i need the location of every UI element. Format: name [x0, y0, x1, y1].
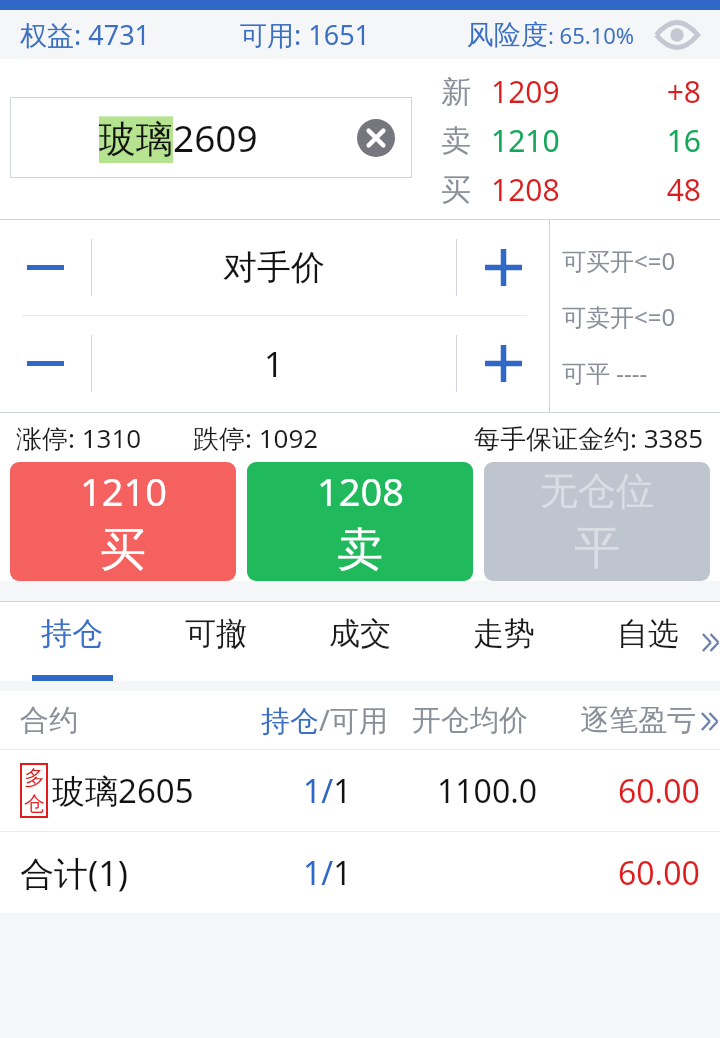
staticText: 涨停: 1310 [16, 420, 142, 456]
staticText: 16 [611, 120, 701, 161]
staticText: 1208 [317, 465, 404, 517]
staticText: 48 [611, 169, 701, 210]
button[interactable]: 买 [441, 165, 711, 214]
button[interactable]: 1210 [10, 462, 236, 581]
button[interactable]: More tabs [700, 625, 720, 659]
staticText: 可买开<=0 [562, 244, 676, 277]
staticText: 无仓位 [540, 467, 654, 515]
button[interactable]: 成交 [288, 602, 432, 681]
button[interactable]: 多 仓 [0, 750, 720, 831]
button[interactable]: 玻璃2609 [10, 97, 412, 178]
staticText: 1/1 [303, 851, 352, 895]
staticText: 玻璃2605 [52, 768, 194, 813]
staticText: +8 [611, 71, 701, 112]
staticText: 开仓均价 [412, 702, 528, 739]
staticText: 跌停: 1092 [193, 420, 319, 456]
staticText: 卖 [337, 521, 383, 579]
button[interactable]: 风险度: 65.10% [467, 18, 635, 52]
staticText: 1/1 [303, 769, 352, 813]
button[interactable]: Toggle balance visibility [653, 13, 701, 57]
button[interactable]: 无仓位 [484, 462, 710, 581]
staticText: 持仓/可用 [261, 700, 388, 740]
staticText: 对手价 [223, 246, 325, 289]
button[interactable]: 可用: 1651 [240, 16, 371, 53]
staticText: 成交 [329, 614, 391, 653]
button[interactable]: 可撤 [144, 602, 288, 681]
button[interactable]: Decrease [0, 220, 91, 315]
button[interactable]: 持仓 [0, 602, 144, 681]
staticText: 持仓 [41, 614, 103, 653]
staticText: 买 [441, 171, 491, 209]
staticText: 新 [441, 73, 491, 111]
staticText: 可卖开<=0 [562, 300, 676, 333]
staticText: 60.00 [618, 851, 700, 895]
button[interactable]: Clear search [357, 119, 395, 157]
staticText: 平 [574, 519, 620, 577]
staticText: 玻璃2609 [99, 112, 258, 163]
button[interactable]: Increase [457, 220, 549, 315]
staticText: 可平 ---- [562, 356, 648, 389]
staticText: 可撤 [185, 614, 247, 653]
staticText: 多 仓 [24, 765, 45, 817]
staticText: 1100.0 [437, 769, 538, 813]
staticText: 1210 [80, 465, 167, 517]
staticText: 60.00 [618, 769, 700, 813]
staticText: 走势 [473, 614, 535, 653]
staticText: 1209 [491, 71, 611, 112]
button[interactable]: Increase [457, 316, 549, 411]
staticText: 逐笔盈亏 [580, 702, 696, 739]
button[interactable]: More columns [699, 706, 720, 736]
staticText: 自选 [617, 614, 679, 653]
staticText: 1210 [491, 120, 611, 161]
button[interactable]: Decrease [0, 316, 91, 411]
staticText: 合约 [20, 702, 78, 739]
staticText: 合计(1) [20, 850, 128, 896]
button[interactable]: 卖 [441, 116, 711, 165]
button[interactable]: 自选 [576, 602, 720, 681]
staticText: 1 [264, 341, 284, 387]
staticText: 卖 [441, 122, 491, 160]
button[interactable]: 新 [441, 67, 711, 116]
staticText: 每手保证金约: 3385 [474, 420, 704, 456]
button[interactable]: 权益: 4731 [20, 16, 151, 53]
staticText: 买 [100, 521, 146, 579]
button[interactable]: 走势 [432, 602, 576, 681]
staticText: 1208 [491, 169, 611, 210]
button[interactable]: 1208 [247, 462, 473, 581]
